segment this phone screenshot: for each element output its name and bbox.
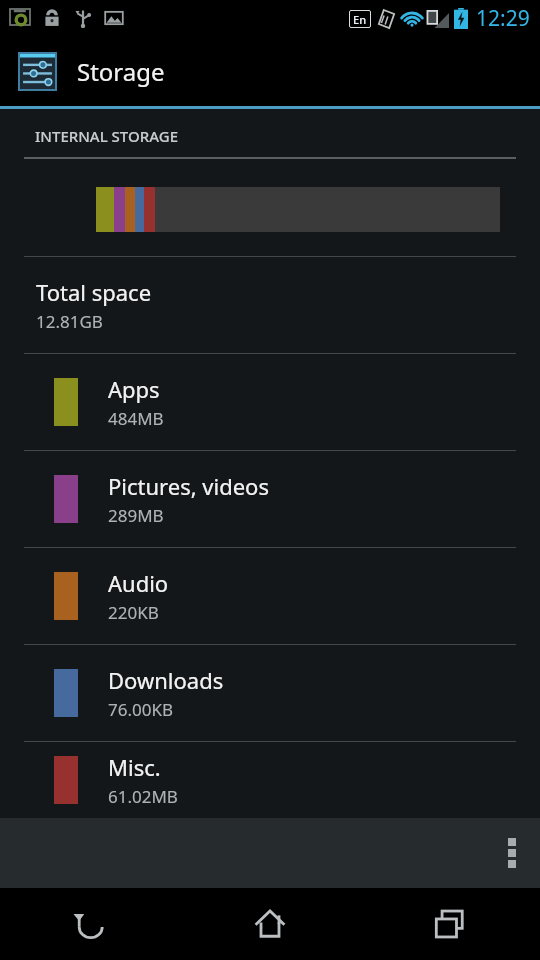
staticText: Storage <box>77 55 165 88</box>
button[interactable]: Recent apps <box>360 888 540 960</box>
button[interactable]: More options <box>484 818 540 888</box>
button[interactable]: Pictures, videos <box>0 451 540 547</box>
button[interactable]: Home <box>180 888 360 960</box>
staticText: 220KB <box>108 601 159 624</box>
staticText: Misc. <box>108 752 161 782</box>
staticText: 76.00KB <box>108 698 174 721</box>
button[interactable]: Downloads <box>0 645 540 741</box>
staticText: 12:29 <box>476 4 530 33</box>
button[interactable]: Storage settings <box>18 36 540 106</box>
staticText: Pictures, videos <box>108 471 269 501</box>
staticText: Apps <box>108 374 160 404</box>
button[interactable]: Audio <box>0 548 540 644</box>
staticText: INTERNAL STORAGE <box>35 126 178 146</box>
staticText: Downloads <box>108 665 224 695</box>
staticText: 61.02MB <box>108 785 178 808</box>
staticText: 12.81GB <box>36 310 103 333</box>
button[interactable]: Apps <box>0 354 540 450</box>
button[interactable]: Total space <box>0 257 540 353</box>
button[interactable]: Back <box>0 888 180 960</box>
staticText: Audio <box>108 568 169 598</box>
staticText: En <box>353 12 367 27</box>
staticText: 289MB <box>108 504 164 527</box>
button[interactable]: Misc. <box>0 742 540 818</box>
staticText: Total space <box>36 277 152 307</box>
staticText: 484MB <box>108 407 164 430</box>
